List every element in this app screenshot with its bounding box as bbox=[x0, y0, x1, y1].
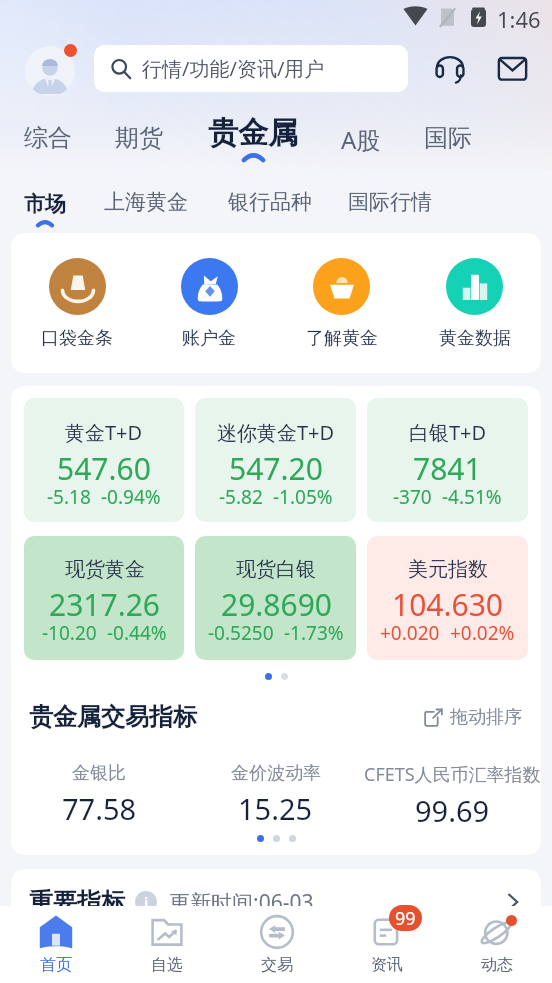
staticText: 行情/功能/资讯/用户 bbox=[142, 55, 325, 82]
button[interactable]: Profile bbox=[25, 44, 77, 96]
button[interactable]: 综合 bbox=[24, 114, 72, 153]
staticText: 547.60 bbox=[57, 448, 151, 489]
staticText: 白银T+D bbox=[409, 419, 487, 446]
staticText: 重要指标 bbox=[29, 887, 125, 917]
button[interactable]: 金价波动率 bbox=[187, 762, 364, 828]
staticText: 迷你黄金T+D bbox=[217, 419, 335, 446]
staticText: -4.51% bbox=[442, 484, 502, 510]
staticText: 自选 bbox=[151, 955, 183, 975]
staticText: 1:46 bbox=[497, 4, 541, 34]
staticText: 更新时间:06-03 bbox=[169, 888, 314, 917]
staticText: -0.44% bbox=[107, 620, 167, 646]
staticText: 拖动排序 bbox=[450, 706, 522, 729]
staticText: 贵金属交易指标 bbox=[29, 702, 197, 732]
button[interactable]: 现货白银 bbox=[195, 536, 356, 660]
staticText: 金银比 bbox=[72, 762, 126, 785]
staticText: 首页 bbox=[40, 955, 72, 975]
staticText: 资讯 bbox=[371, 955, 403, 975]
staticText: 贵金属 bbox=[208, 114, 298, 152]
staticText: 上海黄金 bbox=[104, 189, 188, 215]
button[interactable]: 了解黄金 bbox=[275, 258, 408, 350]
staticText: -0.94% bbox=[101, 484, 161, 510]
button[interactable]: 市场 bbox=[24, 191, 66, 227]
button[interactable]: 行情/功能/资讯/用户 bbox=[94, 45, 408, 92]
staticText: -0.5250 bbox=[208, 620, 274, 646]
staticText: -10.20 bbox=[42, 620, 97, 646]
button[interactable]: 动态 bbox=[442, 906, 552, 983]
staticText: -1.73% bbox=[284, 620, 344, 646]
staticText: -370 bbox=[393, 484, 432, 510]
button[interactable]: 美元指数 bbox=[367, 536, 528, 660]
staticText: 账户金 bbox=[182, 327, 236, 350]
staticText: 99.69 bbox=[415, 791, 490, 830]
button[interactable]: 黄金数据 bbox=[408, 258, 541, 350]
button[interactable]: 贵金属 bbox=[208, 114, 298, 162]
staticText: -1.05% bbox=[273, 484, 333, 510]
staticText: 黄金T+D bbox=[65, 419, 143, 446]
staticText: 现货白银 bbox=[236, 557, 316, 582]
staticText: 黄金数据 bbox=[439, 327, 511, 350]
button[interactable]: 自选 bbox=[111, 906, 222, 983]
button[interactable]: 交易 bbox=[222, 906, 332, 983]
staticText: 7841 bbox=[413, 448, 482, 489]
staticText: 547.20 bbox=[229, 448, 323, 489]
staticText: 104.630 bbox=[392, 584, 503, 625]
staticText: 了解黄金 bbox=[306, 327, 378, 350]
staticText: 期货 bbox=[115, 123, 163, 153]
button[interactable]: Customer service bbox=[432, 50, 468, 86]
staticText: 77.58 bbox=[62, 789, 137, 828]
button[interactable]: 黄金T+D bbox=[24, 398, 184, 522]
staticText: -5.18 bbox=[47, 484, 91, 510]
button[interactable]: 白银T+D bbox=[367, 398, 528, 522]
staticText: 综合 bbox=[24, 123, 72, 153]
staticText: 国际 bbox=[424, 123, 472, 153]
button[interactable]: 口袋金条 bbox=[11, 258, 143, 350]
staticText: 美元指数 bbox=[408, 557, 488, 582]
button[interactable]: 期货 bbox=[115, 114, 163, 153]
staticText: 国际行情 bbox=[348, 189, 432, 215]
staticText: i bbox=[144, 893, 149, 912]
button[interactable]: 银行品种 bbox=[228, 189, 312, 228]
button[interactable]: 金银比 bbox=[11, 762, 187, 828]
staticText: 交易 bbox=[261, 955, 293, 975]
staticText: 动态 bbox=[481, 955, 513, 975]
staticText: 29.8690 bbox=[221, 584, 332, 625]
button[interactable]: A股 bbox=[341, 114, 381, 156]
button[interactable]: 迷你黄金T+D bbox=[195, 398, 356, 522]
staticText: +0.020 bbox=[380, 620, 440, 646]
staticText: 银行品种 bbox=[228, 189, 312, 215]
staticText: 金价波动率 bbox=[231, 762, 321, 785]
button[interactable]: CFETS人民币汇率指数 bbox=[364, 762, 541, 830]
button[interactable]: 国际行情 bbox=[348, 189, 432, 228]
button[interactable]: 国际 bbox=[424, 114, 472, 153]
staticText: A股 bbox=[341, 123, 381, 156]
staticText: +0.02% bbox=[450, 620, 515, 646]
staticText: 现货黄金 bbox=[65, 557, 145, 582]
staticText: 口袋金条 bbox=[41, 327, 113, 350]
staticText: -5.82 bbox=[219, 484, 263, 510]
button[interactable]: 上海黄金 bbox=[104, 189, 188, 228]
staticText: 2317.26 bbox=[49, 584, 160, 625]
button[interactable]: 99 bbox=[332, 906, 442, 983]
button[interactable]: Messages bbox=[494, 50, 530, 86]
staticText: 99 bbox=[395, 906, 416, 931]
staticText: 市场 bbox=[24, 191, 66, 217]
button[interactable]: 现货黄金 bbox=[24, 536, 184, 660]
staticText: CFETS人民币汇率指数 bbox=[364, 762, 541, 787]
staticText: 15.25 bbox=[238, 789, 313, 828]
button[interactable]: 账户金 bbox=[143, 258, 275, 350]
button[interactable]: 首页 bbox=[0, 906, 111, 983]
button[interactable]: 拖动排序 bbox=[424, 706, 522, 729]
